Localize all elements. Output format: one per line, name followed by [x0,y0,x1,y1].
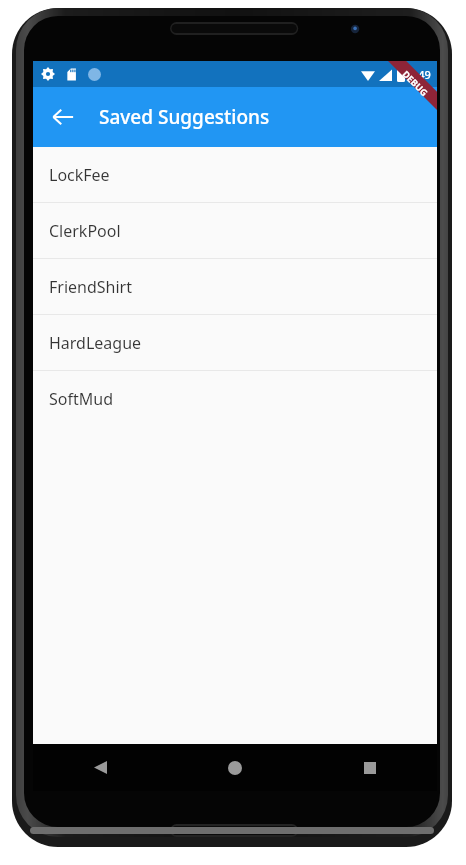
button[interactable]: LockFee [33,147,437,202]
staticText: LockFee [49,164,110,186]
button[interactable]: Back [33,744,167,791]
staticText: SoftMud [49,388,113,410]
button[interactable]: Recent apps [302,744,437,791]
staticText: Saved Suggestions [99,104,270,130]
staticText: ClerkPool [49,220,121,242]
button[interactable]: FriendShirt [33,259,437,314]
button[interactable]: Home [167,744,302,791]
button[interactable]: SoftMud [33,371,437,426]
staticText: FriendShirt [49,276,132,298]
button[interactable]: HardLeague [33,315,437,370]
staticText: HardLeague [49,332,142,354]
button[interactable]: ClerkPool [33,203,437,258]
staticText: DEBUG [400,68,431,98]
staticText: 2:49 [409,67,431,82]
button[interactable]: Navigate up [41,95,85,139]
